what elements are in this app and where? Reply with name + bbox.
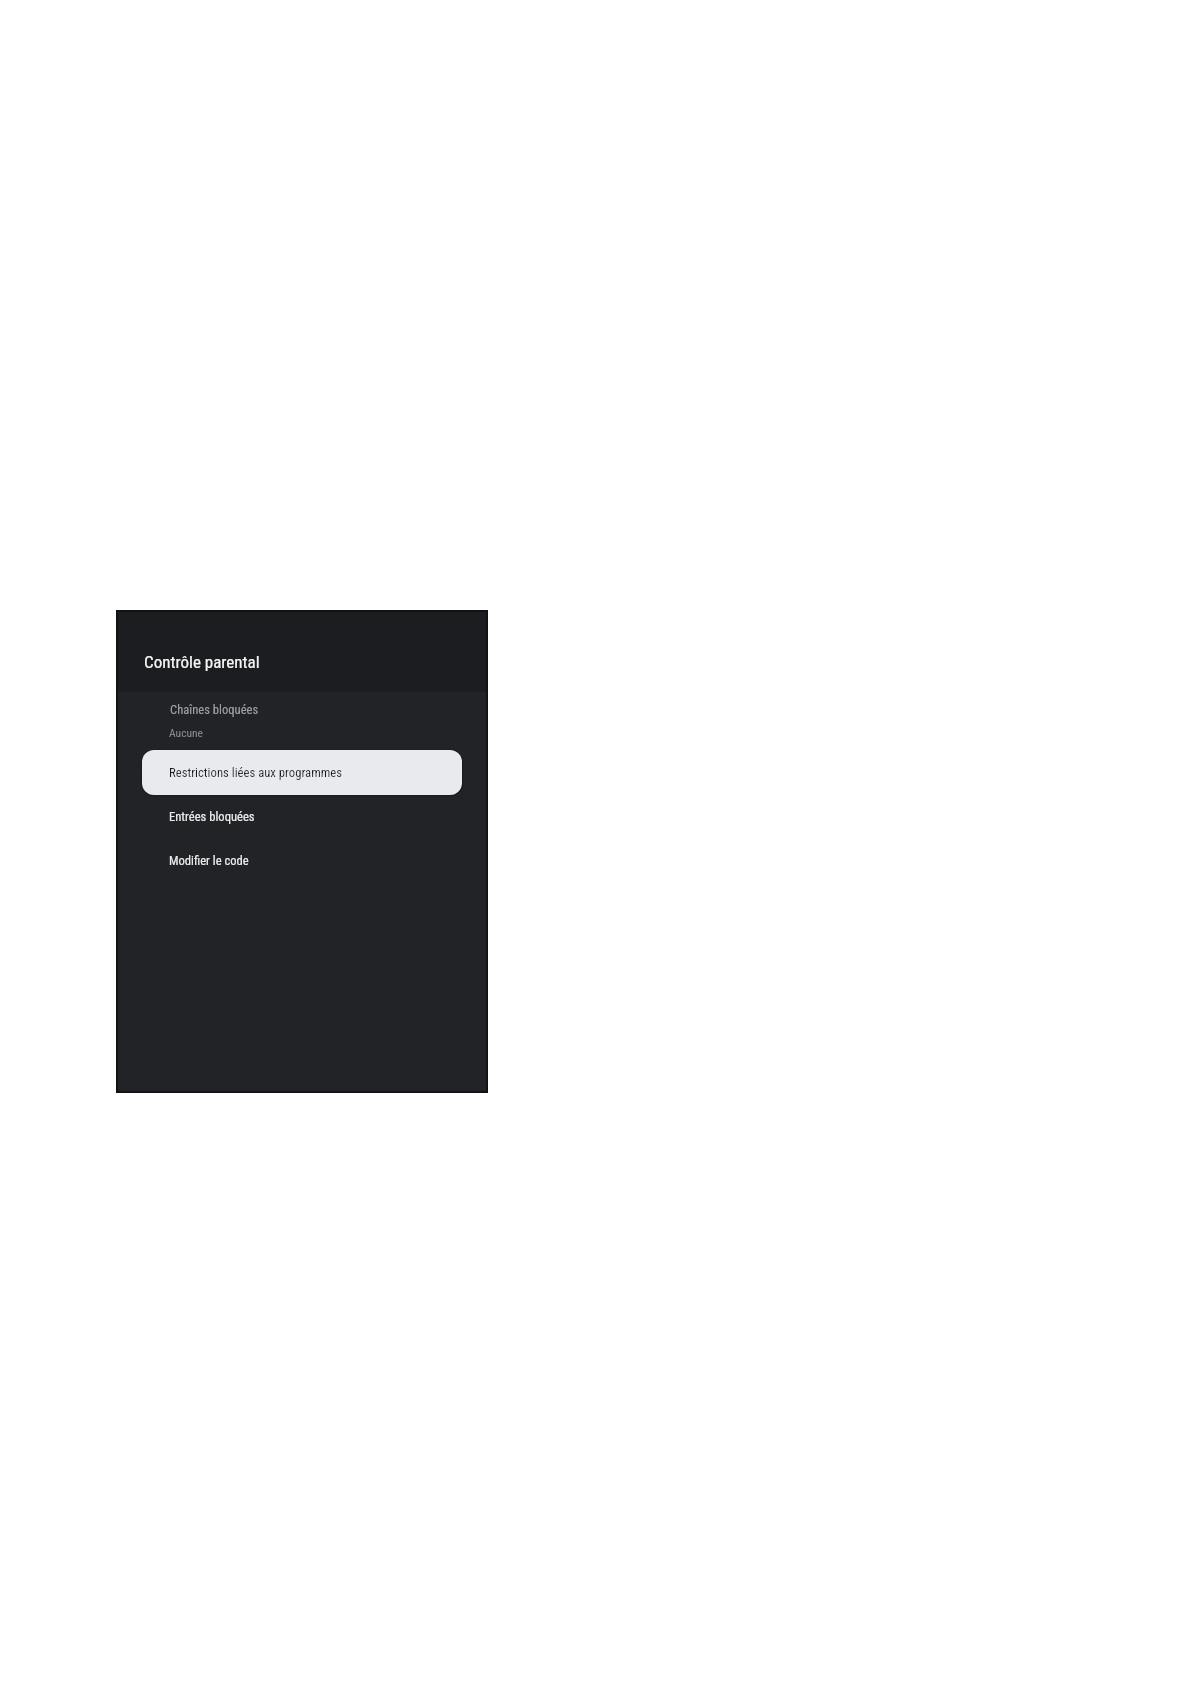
- button[interactable]: Entrées bloquées: [116, 806, 488, 827]
- staticText: Restrictions liées aux programmes: [169, 765, 343, 780]
- staticText: Chaînes bloquées: [170, 702, 259, 717]
- button[interactable]: Chaînes bloquées: [116, 699, 488, 720]
- staticText: Aucune: [169, 726, 203, 739]
- staticText: Entrées bloquées: [169, 809, 255, 824]
- staticText: Contrôle parental: [144, 652, 260, 672]
- staticText: Modifier le code: [169, 853, 249, 868]
- button[interactable]: Modifier le code: [116, 850, 488, 871]
- button[interactable]: Restrictions liées aux programmes: [142, 750, 462, 795]
